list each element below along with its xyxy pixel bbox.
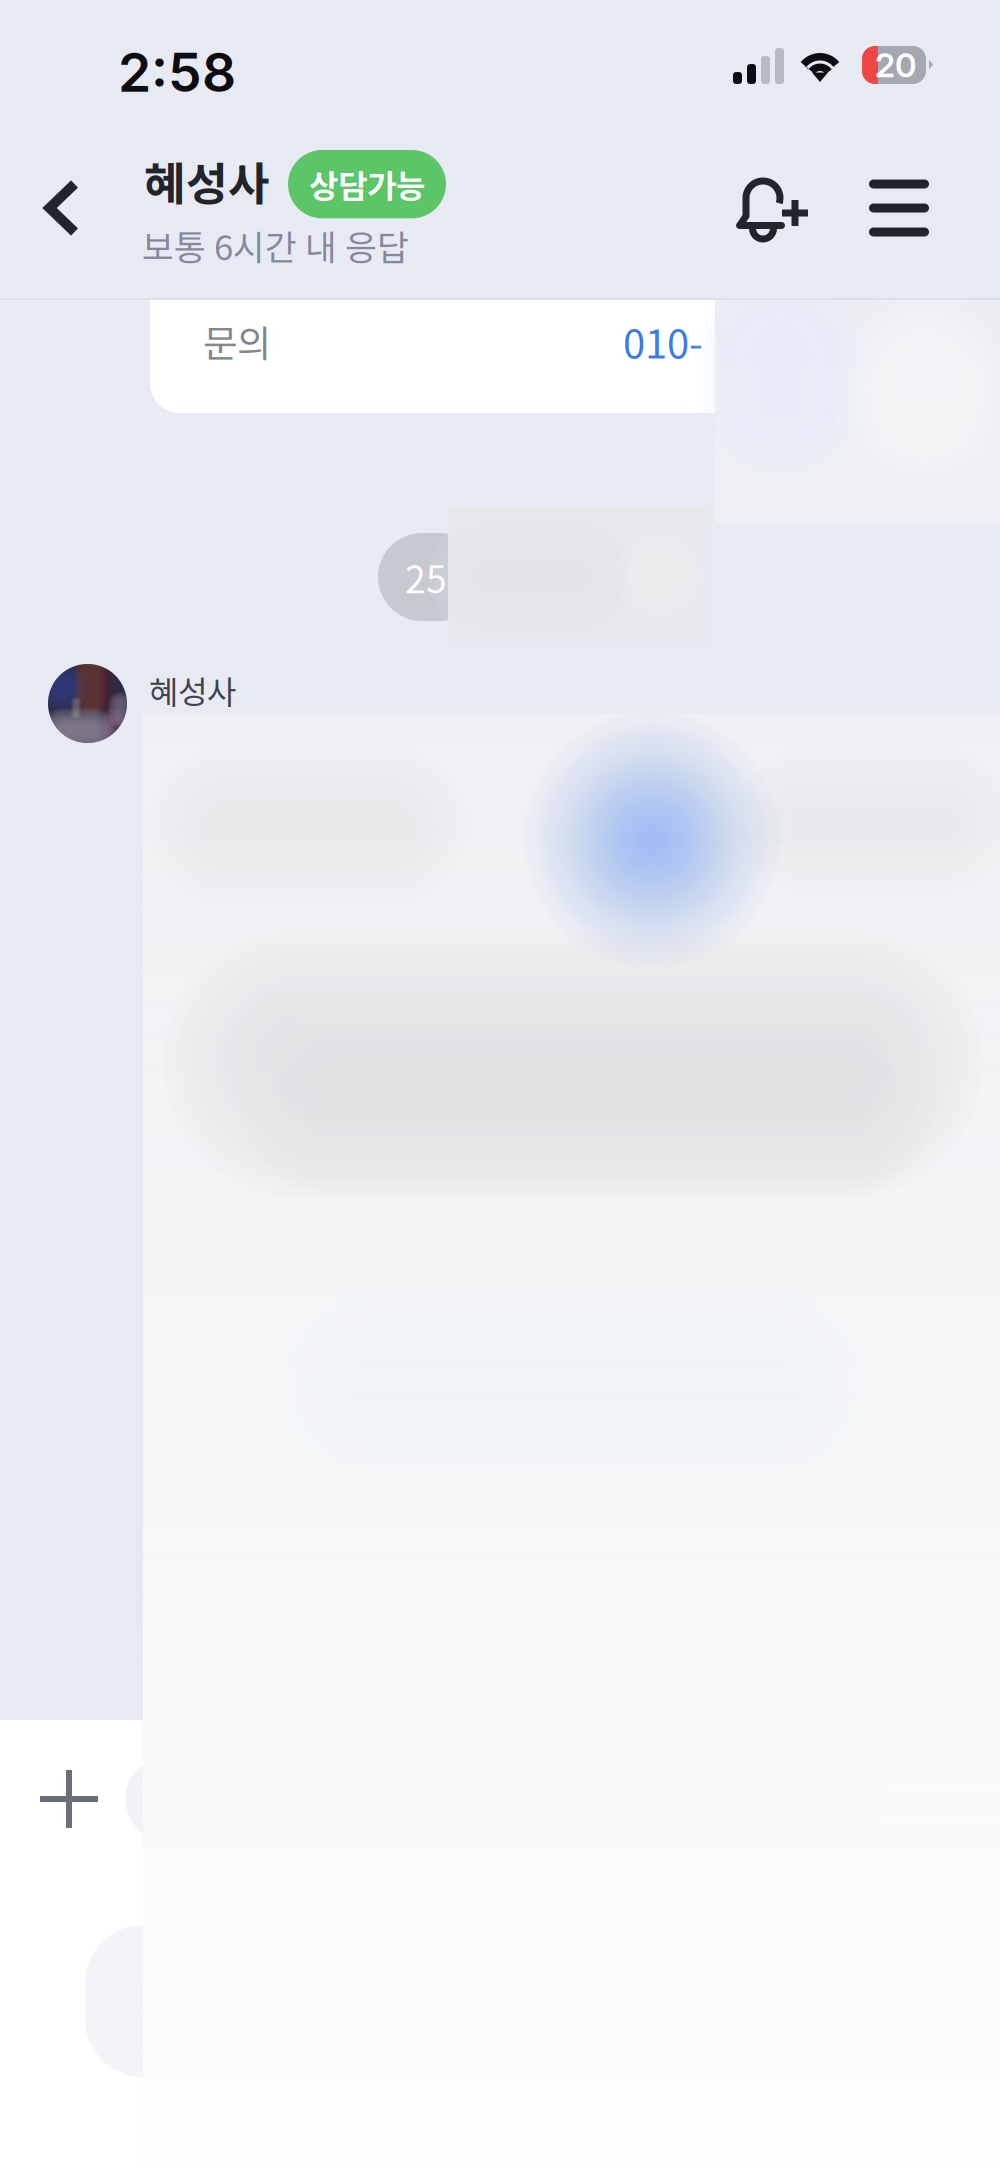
staticText: 010- xyxy=(623,312,703,370)
button[interactable]: Menu xyxy=(840,124,958,292)
staticText: 혜성사 xyxy=(149,667,236,713)
button[interactable]: Back xyxy=(7,124,117,292)
staticText: 보통 6시간 내 응답 xyxy=(142,220,409,270)
staticText: 상담가능 xyxy=(309,161,425,207)
staticText: 20 xyxy=(875,45,917,85)
staticText: 2:58 xyxy=(118,40,236,104)
staticText: 문의 xyxy=(203,314,271,368)
button[interactable]: Notification settings xyxy=(710,124,838,292)
staticText: 혜성사 xyxy=(144,148,270,214)
button[interactable]: Add attachment xyxy=(9,1739,129,1859)
staticText: 25. xyxy=(405,550,457,604)
